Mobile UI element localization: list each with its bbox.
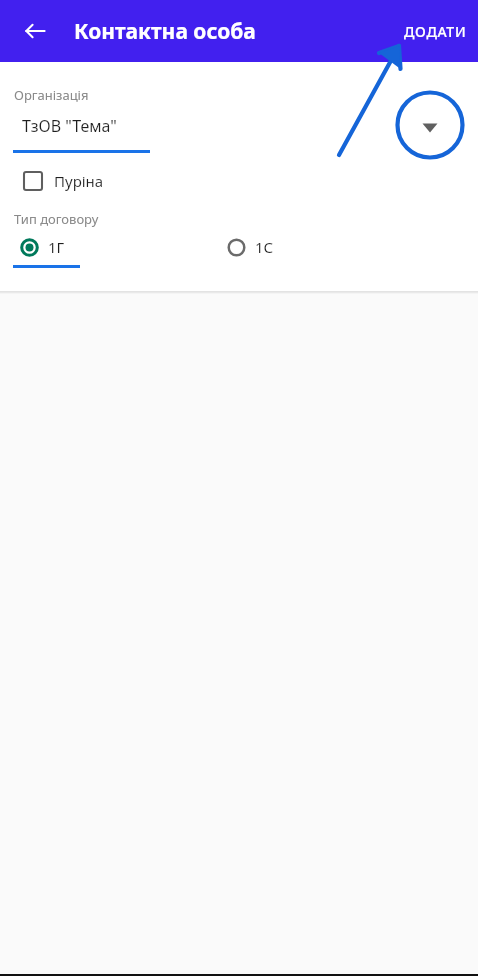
staticText: Організація [14,86,89,104]
staticText: Пуріна [54,171,104,191]
button[interactable]: Пуріна [0,170,114,192]
staticText: ДОДАТИ [404,22,467,41]
staticText: Тип договору [14,210,99,228]
staticText: ТзОВ "Тема" [22,115,117,137]
button[interactable]: 1С [227,235,284,259]
button[interactable]: 1Г [0,235,75,259]
staticText: 1Г [48,237,65,257]
button[interactable]: Back [14,10,56,52]
staticText: Контактна особа [74,17,256,46]
button[interactable]: ДОДАТИ [393,12,478,51]
button[interactable]: ТзОВ "Тема" [0,115,478,137]
staticText: 1С [255,237,274,257]
